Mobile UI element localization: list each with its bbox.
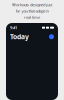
staticText: Workouts designed just: [12, 2, 52, 7]
staticText: Today: [10, 32, 29, 41]
staticText: 9:41: [10, 25, 17, 30]
button[interactable]: Profile: [49, 34, 54, 39]
staticText: real time: [24, 15, 40, 20]
staticText: for you that adapt in: [15, 8, 48, 14]
